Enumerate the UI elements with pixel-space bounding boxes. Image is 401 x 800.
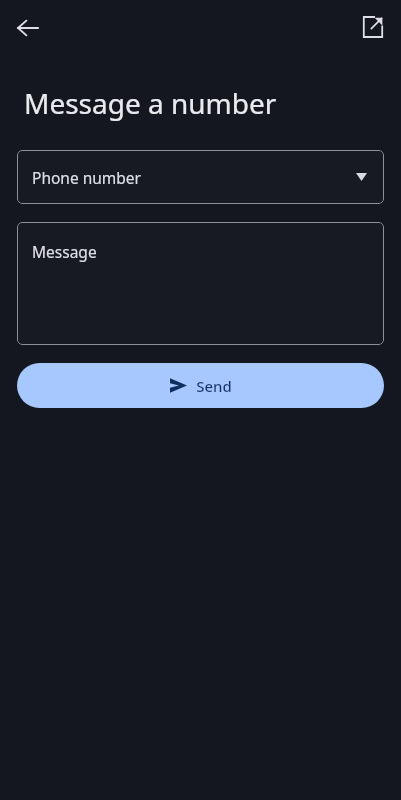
staticText: Send xyxy=(196,376,232,396)
staticText: Message xyxy=(32,241,97,262)
staticText: Phone number xyxy=(32,167,142,188)
staticText: Message a number xyxy=(24,84,277,122)
button[interactable]: Message xyxy=(17,222,384,345)
button[interactable]: Back xyxy=(8,8,48,48)
button[interactable]: Send xyxy=(17,363,384,408)
button[interactable]: Phone number xyxy=(17,150,384,204)
button[interactable]: Open in new window xyxy=(353,7,393,47)
